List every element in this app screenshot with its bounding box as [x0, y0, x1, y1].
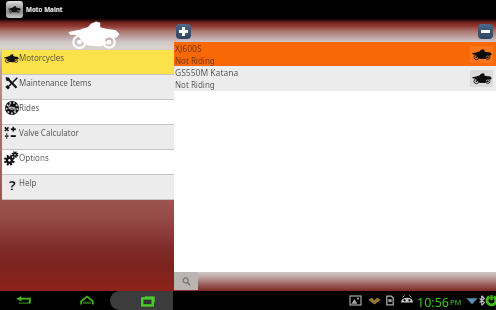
- button[interactable]: Motorcycles: [2, 50, 174, 74]
- staticText: XJ600S: [175, 43, 202, 55]
- button[interactable]: ?: [2, 175, 174, 199]
- staticText: Not Riding: [175, 55, 215, 66]
- button[interactable]: Recent apps: [130, 291, 166, 310]
- button[interactable]: Add: [176, 24, 191, 39]
- button[interactable]: Home: [68, 291, 106, 310]
- button[interactable]: GS550M Katana: [174, 66, 496, 91]
- button[interactable]: Search: [174, 272, 198, 290]
- staticText: Valve Calculator: [19, 127, 79, 138]
- staticText: GS550M Katana: [175, 67, 239, 79]
- button[interactable]: XJ600S: [174, 42, 496, 66]
- button[interactable]: Back: [6, 291, 42, 310]
- staticText: Motorcycles: [19, 52, 65, 63]
- staticText: Moto Maint: [26, 5, 63, 14]
- staticText: Maintenance Items: [19, 77, 92, 88]
- staticText: Help: [19, 177, 37, 188]
- button[interactable]: Valve Calculator: [2, 125, 174, 149]
- staticText: Options: [19, 152, 49, 163]
- button[interactable]: Options: [2, 150, 174, 174]
- staticText: Not Riding: [175, 79, 215, 90]
- button[interactable]: Remove: [478, 24, 493, 39]
- button[interactable]: Rides: [2, 100, 174, 124]
- button[interactable]: Maintenance Items: [2, 75, 174, 99]
- staticText: PM: [450, 297, 462, 307]
- staticText: Rides: [19, 102, 40, 113]
- staticText: ?: [9, 176, 16, 190]
- staticText: 10:56: [417, 294, 449, 310]
